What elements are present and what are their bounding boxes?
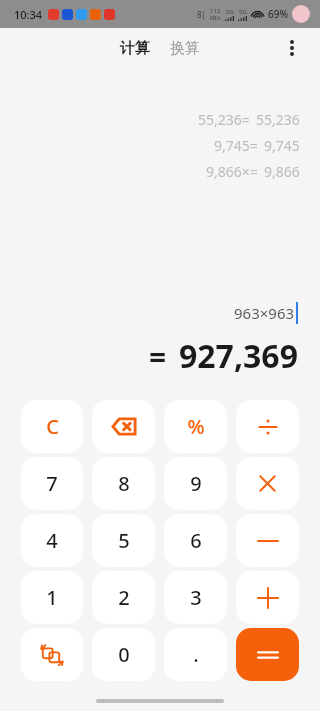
button[interactable]: 2 [92, 571, 155, 624]
button[interactable]: 6 [164, 514, 227, 567]
button[interactable]: 换算 [164, 35, 206, 62]
staticText: % [187, 413, 205, 440]
staticText: 6 [190, 527, 202, 554]
button[interactable] [236, 514, 299, 567]
staticText: 927,369 [179, 334, 298, 378]
button[interactable]: 0 [92, 628, 155, 681]
staticText: 5G [226, 8, 234, 16]
staticText: 9 [190, 470, 202, 497]
button[interactable]: 计算 [114, 35, 156, 62]
button[interactable] [236, 457, 299, 510]
staticText: C [46, 413, 59, 440]
staticText: 计算 [120, 39, 150, 58]
staticText: 69% [268, 7, 288, 21]
staticText: 9,745 [264, 136, 300, 155]
staticText: 1 [46, 584, 58, 611]
staticText: 55,236= [198, 110, 250, 129]
staticText: 9,745= [214, 136, 258, 155]
button[interactable]: 5 [92, 514, 155, 567]
button[interactable]: Convert [21, 628, 83, 681]
staticText: 8 [118, 470, 130, 497]
staticText: KB/s [210, 15, 221, 22]
button[interactable] [92, 400, 155, 453]
button[interactable]: 7 [21, 457, 83, 510]
button[interactable]: More options [278, 34, 306, 62]
staticText: . [193, 641, 199, 668]
staticText: 0 [118, 641, 130, 668]
button[interactable]: 3 [164, 571, 227, 624]
button[interactable]: % [164, 400, 227, 453]
button[interactable] [236, 400, 299, 453]
staticText: 换算 [170, 39, 200, 58]
button[interactable]: 1 [21, 571, 83, 624]
staticText: 5G [239, 8, 247, 16]
staticText: 4 [46, 527, 58, 554]
staticText: 10:34 [14, 7, 43, 22]
button[interactable]: 4 [21, 514, 83, 567]
staticText: 8| [197, 9, 206, 20]
button[interactable] [236, 571, 299, 624]
staticText: 3 [190, 584, 202, 611]
button[interactable]: 9,745= [214, 136, 300, 155]
staticText: = [149, 336, 167, 377]
staticText: 112 [210, 7, 221, 15]
button[interactable]: 8 [92, 457, 155, 510]
button[interactable]: 9 [164, 457, 227, 510]
staticText: 55,236 [256, 110, 300, 129]
staticText: 7 [46, 470, 58, 497]
button[interactable]: 55,236= [198, 110, 300, 129]
button[interactable]: 9,866×= [206, 162, 300, 181]
button[interactable]: . [164, 628, 227, 681]
button[interactable]: Equals [236, 628, 299, 681]
button[interactable]: C [21, 400, 83, 453]
staticText: 9,866×= [206, 162, 258, 181]
staticText: 5 [118, 527, 130, 554]
staticText: 9,866 [264, 162, 300, 181]
staticText: 963×963 [234, 303, 295, 323]
staticText: 2 [118, 584, 130, 611]
